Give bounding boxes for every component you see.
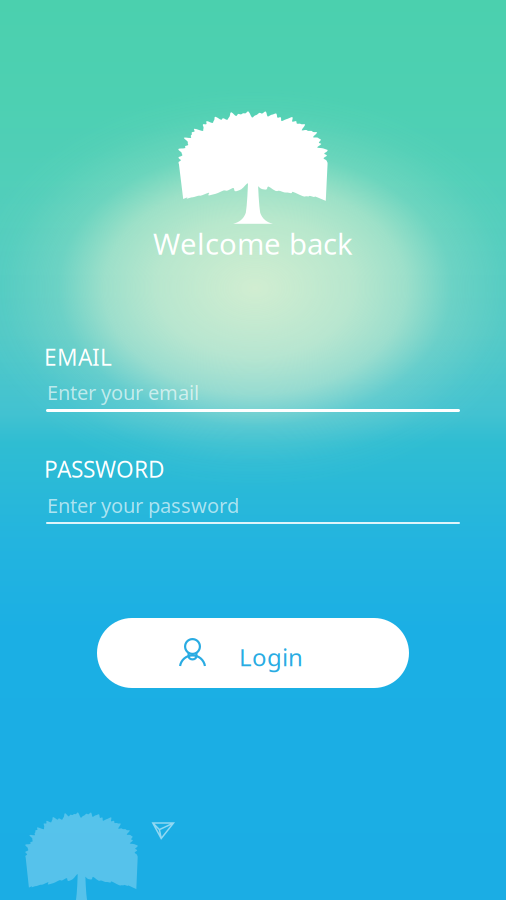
staticText: Enter your password xyxy=(47,492,239,519)
staticText: EMAIL xyxy=(44,342,112,372)
staticText: Login xyxy=(239,641,303,673)
staticText: Welcome back xyxy=(153,224,353,263)
staticText: Enter your email xyxy=(47,379,199,406)
staticText: PASSWORD xyxy=(44,454,165,484)
button[interactable]: Login xyxy=(97,618,409,688)
